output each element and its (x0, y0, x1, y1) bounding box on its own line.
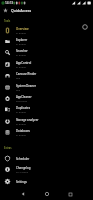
staticText: in queue (16, 122, 26, 125)
staticText: idle (16, 76, 21, 79)
staticText: Extras (4, 146, 12, 149)
button[interactable]: Home (40, 187, 54, 200)
staticText: Tools (4, 19, 11, 22)
button[interactable]: Duplicates (0, 104, 93, 115)
staticText: idle (16, 88, 21, 91)
button[interactable]: CarouselFinder (0, 70, 93, 81)
button[interactable]: Scheduler (0, 153, 93, 164)
button[interactable]: Settings (0, 176, 93, 187)
staticText: in queue (16, 110, 26, 113)
staticText: Explorer (16, 38, 28, 42)
staticText: in queue (16, 65, 26, 68)
staticText: AppControl (16, 61, 32, 65)
button[interactable]: Recents (63, 187, 77, 200)
staticText: in queue (16, 133, 26, 136)
staticText: AppCleaner (16, 95, 32, 99)
button[interactable]: AppControl (0, 59, 93, 70)
button[interactable]: SystemCleaner (0, 82, 93, 93)
staticText: searching (16, 99, 27, 102)
staticText: Overview (16, 27, 29, 31)
staticText: in queue (16, 42, 26, 45)
staticText: in queue (16, 31, 26, 34)
staticText: 14:13 (5, 1, 14, 5)
staticText: Changelog (16, 166, 31, 170)
staticText: SystemCleaner (16, 84, 36, 88)
button[interactable]: Overview (0, 25, 93, 36)
button[interactable]: Searcher (0, 47, 93, 58)
button[interactable]: Progress (82, 24, 88, 30)
staticText: CarouselFinder (16, 72, 37, 76)
staticText: Settings (16, 180, 27, 184)
button[interactable]: Explorer (0, 36, 93, 47)
button[interactable]: Changelog (0, 164, 93, 175)
staticText: QuickAccess (11, 8, 32, 13)
staticText: Databases (16, 129, 30, 133)
staticText: Duplicates (16, 106, 31, 110)
button[interactable]: Databases (0, 127, 93, 138)
button[interactable]: Storage analyzer (0, 116, 93, 127)
staticText: Searcher (16, 49, 28, 53)
staticText: Scheduler (16, 157, 30, 161)
staticText: in queue (16, 53, 26, 56)
button[interactable]: Back (16, 187, 30, 200)
staticText: Storage analyzer (16, 118, 39, 122)
staticText: v0.4.32503 (16, 170, 29, 173)
button[interactable]: AppCleaner (0, 93, 93, 104)
